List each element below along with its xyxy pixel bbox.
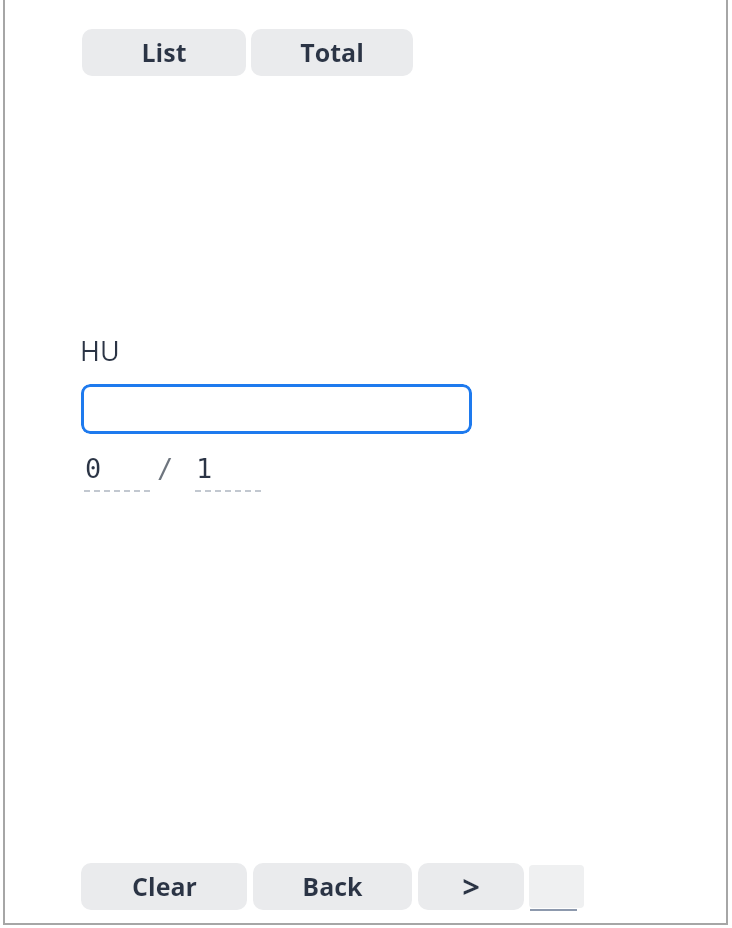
staticText: Back [302,869,363,903]
button[interactable]: Back [253,863,412,910]
staticText: > [462,865,480,907]
button[interactable]: Clear [81,863,247,910]
button[interactable]: Total [251,29,413,76]
button[interactable]: List [82,29,246,76]
staticText: 1 [196,453,213,484]
button[interactable]: HU input field [81,384,472,434]
staticText: Total [300,35,364,69]
staticText: List [141,35,187,69]
staticText: 0 [85,453,102,484]
button[interactable]: Next [418,863,524,910]
staticText: HU [80,332,120,369]
staticText: Clear [132,869,197,903]
staticText: / [157,453,174,484]
